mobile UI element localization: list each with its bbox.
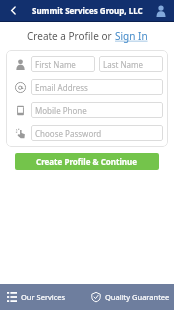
staticText: Choose Password — [35, 128, 102, 139]
button[interactable]: Back — [0, 0, 26, 21]
button[interactable]: Last Name — [99, 56, 163, 72]
button[interactable]: Our Services — [0, 284, 87, 310]
button[interactable]: Sign In — [115, 29, 148, 43]
staticText: Summit Services Group, LLC — [32, 5, 143, 16]
staticText: Our Services — [21, 292, 66, 302]
staticText: Email Address — [35, 82, 88, 93]
button[interactable]: Mobile Phone — [31, 102, 163, 118]
staticText: Quality Guarantee — [105, 292, 170, 302]
button[interactable]: Quality Guarantee — [87, 284, 174, 310]
button[interactable]: Choose Password — [31, 125, 163, 141]
button[interactable]: Account — [148, 0, 174, 21]
staticText: Last Name — [103, 59, 144, 70]
staticText: Create a Profile or — [27, 29, 115, 43]
button[interactable]: First Name — [31, 56, 95, 72]
button[interactable]: Create Profile & Continue — [15, 153, 159, 170]
staticText: Create Profile & Continue — [36, 156, 138, 167]
staticText: First Name — [35, 59, 76, 70]
button[interactable]: Email Address — [31, 79, 163, 95]
staticText: Mobile Phone — [35, 105, 87, 116]
